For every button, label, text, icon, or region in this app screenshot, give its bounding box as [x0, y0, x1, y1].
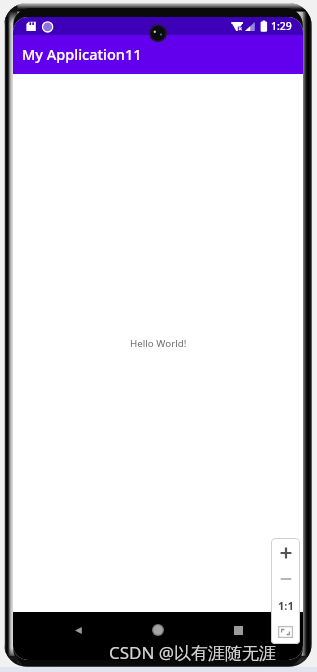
- button[interactable]: Home: [147, 619, 169, 641]
- button[interactable]: Recent apps: [227, 619, 249, 641]
- button[interactable]: 1:1: [271, 592, 300, 619]
- button[interactable]: My Application11: [13, 35, 303, 74]
- staticText: 1:29: [271, 19, 292, 33]
- button[interactable]: Back: [67, 619, 89, 641]
- button[interactable]: Zoom in: [271, 538, 300, 565]
- button[interactable]: Fit to screen: [271, 619, 300, 644]
- button[interactable]: Zoom out: [271, 565, 300, 592]
- staticText: Hello World!: [130, 337, 187, 350]
- staticText: CSDN @以有涯随无涯: [109, 641, 277, 664]
- staticText: 1:1: [278, 598, 294, 613]
- staticText: My Application11: [22, 44, 142, 64]
